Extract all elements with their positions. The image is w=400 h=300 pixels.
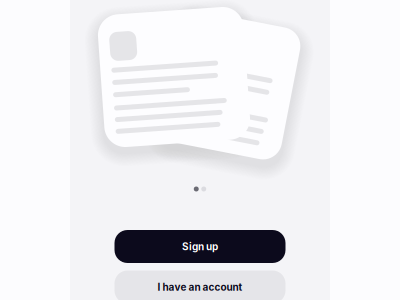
staticText: Sign up: [182, 240, 218, 253]
staticText: I have an account: [157, 281, 242, 293]
button[interactable]: I have an account: [114, 270, 285, 300]
button[interactable]: Sign up: [114, 230, 285, 263]
